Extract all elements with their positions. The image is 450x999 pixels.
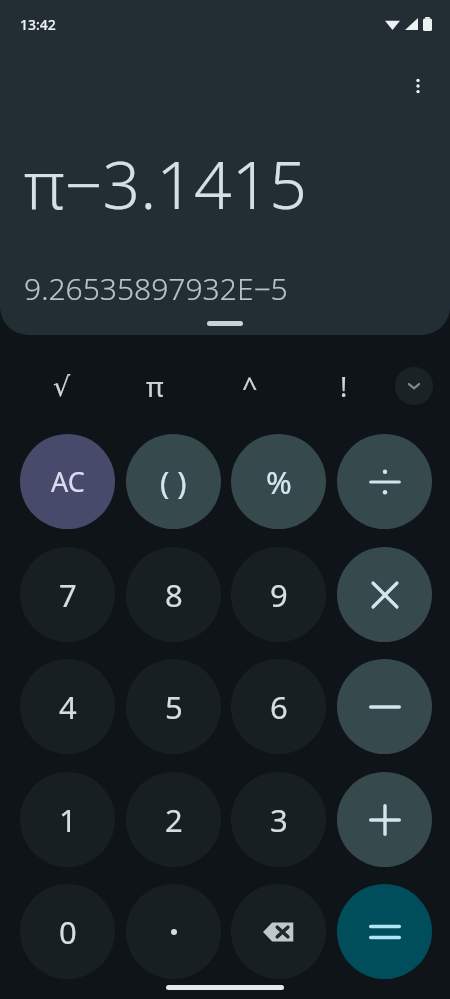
button[interactable]: ! [314, 356, 374, 416]
staticText: 4 [59, 686, 77, 728]
button[interactable]: Divide [337, 434, 432, 529]
staticText: √ [53, 371, 71, 402]
staticText: 3 [270, 799, 288, 841]
staticText: 5 [165, 686, 183, 728]
button[interactable]: Minus [337, 659, 432, 754]
button[interactable]: Plus [337, 772, 432, 867]
button[interactable]: Multiply [337, 547, 432, 642]
button[interactable]: ( ) [126, 434, 221, 529]
staticText: 6 [270, 686, 288, 728]
staticText: 7 [59, 574, 77, 616]
staticText: 2 [165, 799, 183, 841]
button[interactable]: Equals [337, 884, 432, 979]
button[interactable]: Decimal point [126, 884, 221, 979]
button[interactable]: 3 [231, 772, 326, 867]
button[interactable]: 4 [20, 659, 115, 754]
staticText: 13:42 [20, 15, 56, 34]
staticText: 0 [59, 911, 77, 953]
staticText: π−3.1415 [24, 138, 308, 228]
button[interactable]: % [231, 434, 326, 529]
staticText: ( ) [160, 461, 187, 503]
button[interactable]: 9 [231, 547, 326, 642]
button[interactable]: π [125, 356, 185, 416]
staticText: % [266, 461, 292, 503]
staticText: 9 [270, 574, 288, 616]
button[interactable]: 5 [126, 659, 221, 754]
staticText: AC [51, 463, 85, 500]
button[interactable]: 0 [20, 884, 115, 979]
button[interactable]: Expand functions [395, 367, 433, 405]
button[interactable]: 2 [126, 772, 221, 867]
button[interactable]: ^ [220, 356, 280, 416]
button[interactable]: √ [32, 356, 92, 416]
staticText: ! [340, 368, 348, 405]
button[interactable]: 1 [20, 772, 115, 867]
staticText: π [146, 368, 164, 405]
staticText: 1 [59, 799, 77, 841]
button[interactable]: 8 [126, 547, 221, 642]
button[interactable]: Backspace [231, 884, 326, 979]
staticText: 9.26535897932E−5 [24, 268, 288, 309]
button[interactable]: AC [20, 434, 115, 529]
staticText: ^ [242, 368, 258, 405]
button[interactable]: 6 [231, 659, 326, 754]
staticText: 8 [165, 574, 183, 616]
button[interactable]: More options [396, 64, 440, 108]
button[interactable]: 7 [20, 547, 115, 642]
